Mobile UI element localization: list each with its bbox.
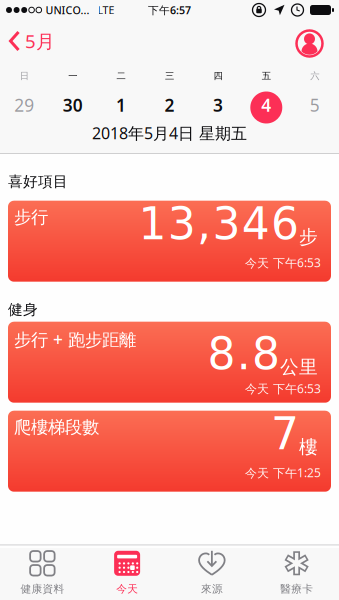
button[interactable]: 爬樓梯段數: [8, 411, 331, 492]
staticText: 爬樓梯段數: [14, 417, 99, 438]
staticText: LTE: [98, 3, 115, 17]
staticText: 今天 下午6:53: [245, 255, 321, 271]
button[interactable]: 29: [0, 89, 48, 121]
staticText: 今天: [116, 582, 138, 595]
staticText: 7: [271, 408, 299, 460]
staticText: 一: [68, 70, 77, 82]
staticText: 喜好項目: [8, 173, 68, 191]
button[interactable]: 30: [48, 89, 97, 121]
staticText: 步行 + 跑步距離: [14, 328, 136, 351]
button[interactable]: 4: [242, 89, 290, 121]
staticText: 1: [116, 93, 126, 116]
button[interactable]: 今天: [85, 545, 170, 595]
staticText: 醫療卡: [280, 582, 313, 595]
staticText: 4: [261, 93, 271, 116]
staticText: 5月: [25, 29, 55, 53]
staticText: 8.8: [207, 328, 280, 380]
button[interactable]: 步行 + 跑步距離: [8, 322, 331, 403]
staticText: 二: [117, 70, 126, 82]
button[interactable]: 1: [97, 89, 145, 121]
staticText: UNICO...: [46, 3, 90, 17]
staticText: 三: [165, 70, 174, 82]
staticText: 來源: [201, 582, 223, 595]
staticText: 下午6:57: [148, 3, 191, 17]
staticText: 30: [63, 93, 83, 116]
staticText: 5: [310, 93, 320, 116]
button[interactable]: 來源: [169, 545, 254, 595]
staticText: 樓: [299, 436, 318, 458]
staticText: 日: [20, 70, 29, 82]
staticText: 步行: [14, 207, 48, 228]
button[interactable]: 2: [145, 89, 194, 121]
button[interactable]: 個人檔案: [296, 27, 339, 54]
button[interactable]: 步行: [8, 201, 331, 282]
button[interactable]: 3: [194, 89, 242, 121]
staticText: 四: [213, 70, 222, 82]
staticText: 六: [310, 70, 319, 82]
button[interactable]: 5月: [0, 29, 55, 53]
staticText: 今天 下午1:25: [245, 465, 321, 481]
button[interactable]: 健康資料: [0, 545, 85, 595]
button[interactable]: 醫療卡: [254, 545, 339, 595]
staticText: 2018年5月4日 星期五: [92, 122, 247, 144]
staticText: 今天 下午6:53: [245, 381, 321, 396]
staticText: 五: [262, 70, 271, 82]
staticText: 步: [299, 226, 318, 248]
staticText: 健康資料: [20, 582, 64, 595]
staticText: 29: [14, 93, 34, 116]
staticText: 公里: [280, 356, 318, 378]
staticText: 3: [213, 93, 223, 116]
staticText: 2: [164, 93, 174, 116]
staticText: 13,346: [138, 198, 299, 250]
staticText: 健身: [8, 301, 38, 319]
button[interactable]: 5: [290, 89, 339, 121]
